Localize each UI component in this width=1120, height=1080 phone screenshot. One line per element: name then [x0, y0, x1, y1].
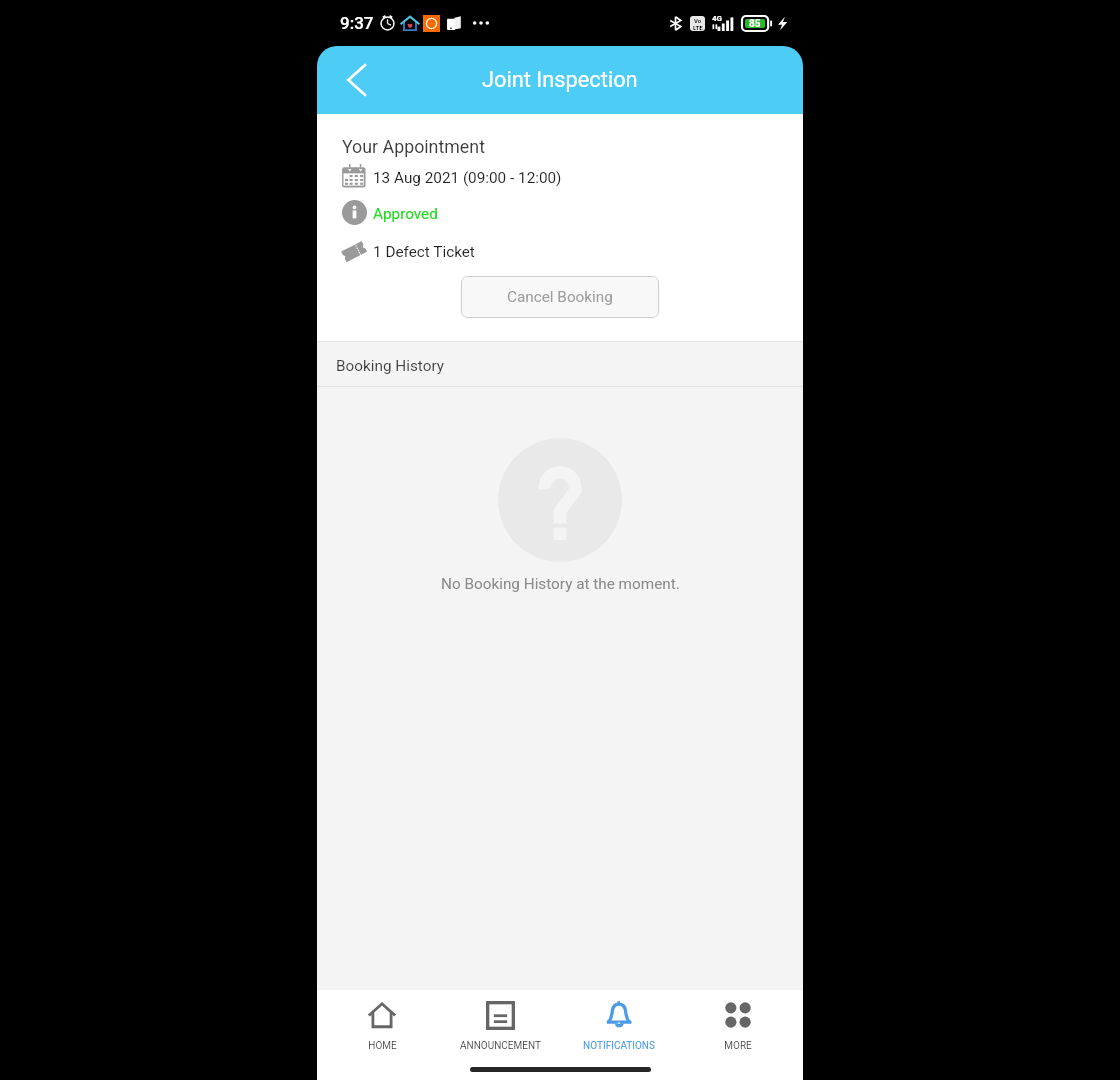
staticText: Joint Inspection: [482, 67, 638, 93]
staticText: LTE: [693, 24, 703, 31]
staticText: NOTIFICATIONS: [583, 1040, 655, 1052]
staticText: 4G: [712, 14, 723, 23]
staticText: MORE: [724, 1040, 752, 1052]
button[interactable]: Cancel Booking: [461, 276, 659, 318]
button[interactable]: ANNOUNCEMENT: [441, 990, 559, 1058]
staticText: 9:37: [340, 13, 374, 33]
button[interactable]: NOTIFICATIONS: [559, 990, 678, 1058]
staticText: 85: [749, 18, 761, 30]
staticText: 1 Defect Ticket: [373, 243, 475, 261]
staticText: Booking History: [336, 357, 444, 375]
staticText: HOME: [368, 1040, 397, 1052]
staticText: Approved: [373, 205, 438, 223]
staticText: 13 Aug 2021 (09:00 - 12:00): [373, 169, 562, 187]
staticText: Vo: [694, 17, 702, 24]
staticText: No Booking History at the moment.: [441, 575, 680, 593]
button[interactable]: Back: [333, 56, 381, 104]
button[interactable]: HOME: [323, 990, 441, 1058]
staticText: ANNOUNCEMENT: [460, 1040, 541, 1052]
staticText: Cancel Booking: [507, 288, 613, 306]
button[interactable]: MORE: [678, 990, 797, 1058]
staticText: Your Appointment: [342, 136, 485, 157]
